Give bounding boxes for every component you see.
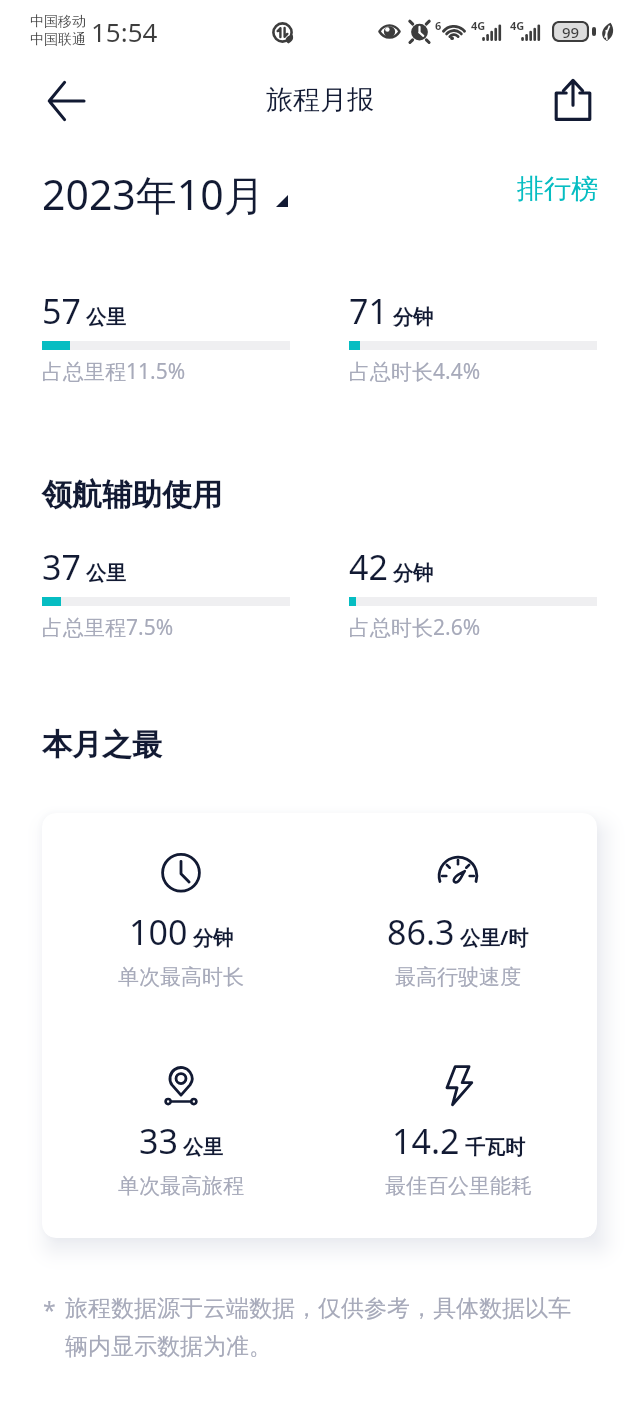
staticText: 分钟	[393, 561, 433, 586]
staticText: 57	[42, 288, 81, 334]
button[interactable]: Share	[545, 72, 601, 128]
staticText: 领航辅助使用	[42, 476, 222, 514]
staticText: 公里	[86, 305, 126, 330]
staticText: 公里/时	[460, 924, 529, 951]
staticText: 旅程月报	[266, 83, 374, 117]
staticText: 42	[349, 544, 388, 590]
staticText: 中国移动	[30, 13, 86, 31]
staticText: 100	[129, 909, 188, 955]
staticText: 占总里程7.5%	[42, 613, 174, 642]
staticText: 公里	[86, 561, 126, 586]
staticText: 单次最高旅程	[118, 1173, 244, 1199]
staticText: 33	[139, 1118, 178, 1164]
staticText: 最佳百公里能耗	[385, 1173, 532, 1199]
staticText: 37	[42, 544, 81, 590]
staticText: 中国联通	[30, 31, 86, 49]
staticText: 99	[562, 22, 580, 42]
staticText: 旅程数据源于云端数据，仅供参考，具体数据以车 辆内显示数据为准。	[65, 1294, 571, 1361]
staticText: 86.3	[387, 909, 455, 955]
staticText: 占总时长4.4%	[349, 357, 481, 386]
staticText: 占总里程11.5%	[42, 357, 186, 386]
staticText: 71	[349, 288, 388, 334]
staticText: 占总时长2.6%	[349, 613, 481, 642]
staticText: 4G	[471, 18, 486, 33]
staticText: 6	[435, 18, 442, 33]
staticText: *	[43, 1294, 56, 1325]
staticText: 15:54	[91, 14, 158, 49]
staticText: 4G	[510, 18, 525, 33]
staticText: 本月之最	[42, 726, 162, 764]
button[interactable]: Back	[40, 75, 92, 127]
staticText: 排行榜	[517, 172, 598, 206]
staticText: 14.2	[392, 1118, 460, 1164]
staticText: 2023年10月	[42, 166, 265, 222]
button[interactable]: 2023年10月	[42, 166, 288, 222]
staticText: 千瓦时	[465, 1135, 525, 1160]
staticText: 最高行驶速度	[395, 964, 521, 990]
staticText: 单次最高时长	[118, 964, 244, 990]
staticText: 分钟	[393, 305, 433, 330]
staticText: 分钟	[193, 926, 233, 951]
button[interactable]: 排行榜	[517, 172, 598, 206]
staticText: 公里	[183, 1135, 223, 1160]
